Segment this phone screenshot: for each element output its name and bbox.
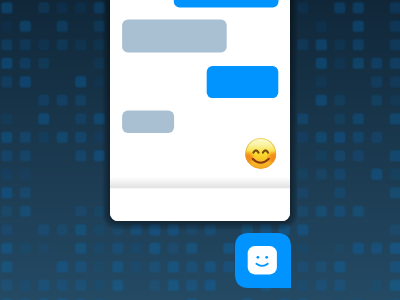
button[interactable]: Conversation bbox=[110, 0, 290, 221]
button[interactable]: Open Messages bbox=[235, 233, 291, 288]
